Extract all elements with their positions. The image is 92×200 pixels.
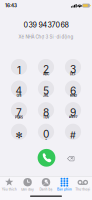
staticText: Danh bạ <box>39 187 52 191</box>
button[interactable]: 5 <box>38 80 54 97</box>
staticText: + <box>45 137 47 141</box>
button[interactable]: Gần đây <box>18 177 37 191</box>
staticText: 039 9437068 <box>23 21 68 29</box>
staticText: # <box>70 130 76 141</box>
button[interactable]: Call <box>38 149 55 167</box>
staticText: JKL <box>43 94 49 98</box>
button[interactable]: Yêu thích <box>0 177 18 191</box>
staticText: 8 <box>43 106 49 119</box>
staticText: Yêu thích <box>2 187 17 191</box>
staticText: 4 <box>15 85 22 97</box>
staticText: 1 <box>17 64 21 76</box>
staticText: 2 <box>43 63 49 75</box>
button[interactable]: 8 <box>38 102 54 118</box>
button[interactable]: 1 <box>11 59 27 75</box>
button[interactable]: Bàn phím <box>55 177 74 191</box>
button[interactable]: Delete <box>63 151 79 167</box>
staticText: Xé NHÀ Chợ 3 Si · di động <box>18 34 73 40</box>
button[interactable]: Thư thoại <box>74 177 92 191</box>
staticText: 9 <box>70 106 76 119</box>
button[interactable]: 9 <box>65 102 81 118</box>
staticText: PQRS <box>15 115 23 119</box>
staticText: TUV <box>43 115 49 119</box>
button[interactable]: 7 <box>11 102 27 118</box>
button[interactable]: 6 <box>65 80 81 97</box>
staticText: ✻ <box>15 130 22 140</box>
staticText: 6 <box>70 85 76 97</box>
staticText: 5 <box>43 85 49 97</box>
button[interactable]: 4 <box>11 80 27 97</box>
staticText: ABC <box>43 72 49 76</box>
button[interactable]: 2 <box>38 59 54 75</box>
staticText: Bàn phím <box>57 187 72 191</box>
staticText: GHI <box>16 94 21 98</box>
button[interactable]: 0 <box>38 124 54 140</box>
button[interactable]: ✻ <box>11 124 27 140</box>
staticText: 7 <box>16 106 22 119</box>
button[interactable]: Danh bạ <box>37 177 55 191</box>
button[interactable]: 3 <box>65 59 81 75</box>
staticText: Thư thoại <box>75 187 90 191</box>
staticText: Gần đây <box>21 187 34 191</box>
staticText: 0 <box>43 128 49 140</box>
staticText: 16:43 <box>5 3 17 8</box>
button[interactable]: # <box>65 124 81 140</box>
staticText: DEF <box>70 72 76 76</box>
staticText: MNO <box>69 94 76 98</box>
staticText: 3 <box>70 63 76 75</box>
staticText: WXYZ <box>68 115 77 119</box>
